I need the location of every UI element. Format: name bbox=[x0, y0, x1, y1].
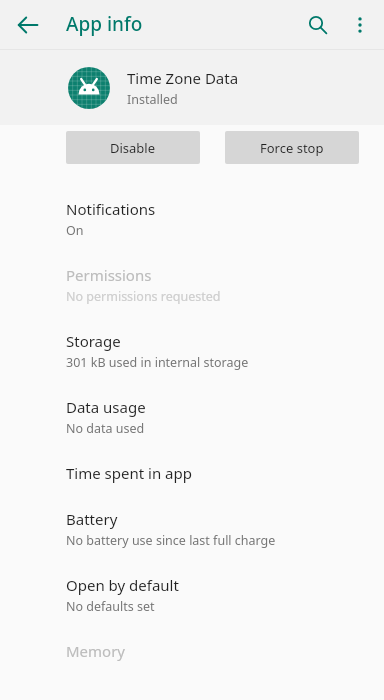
staticText: Time Zone Data bbox=[127, 68, 239, 88]
button[interactable]: Back bbox=[8, 5, 48, 45]
staticText: Open by default bbox=[66, 575, 179, 595]
staticText: No permissions requested bbox=[66, 288, 221, 305]
button[interactable]: Permissions bbox=[0, 252, 384, 318]
staticText: On bbox=[66, 222, 84, 239]
staticText: Notifications bbox=[66, 199, 156, 219]
staticText: No data used bbox=[66, 420, 145, 437]
button[interactable]: Open by default bbox=[0, 562, 384, 628]
button[interactable]: Notifications bbox=[0, 186, 384, 252]
staticText: Force stop bbox=[260, 139, 324, 157]
button[interactable]: Memory bbox=[0, 628, 384, 674]
button[interactable]: More options bbox=[340, 5, 380, 45]
staticText: Data usage bbox=[66, 397, 146, 417]
button[interactable]: Time spent in app bbox=[0, 450, 384, 496]
button[interactable]: Storage bbox=[0, 318, 384, 384]
button[interactable]: Force stop bbox=[225, 131, 359, 164]
staticText: No defaults set bbox=[66, 598, 155, 615]
button[interactable]: Time Zone Data bbox=[0, 50, 384, 125]
staticText: No battery use since last full charge bbox=[66, 532, 276, 549]
button[interactable]: Search bbox=[296, 3, 340, 47]
staticText: 301 kB used in internal storage bbox=[66, 354, 249, 371]
staticText: Memory bbox=[66, 641, 126, 661]
staticText: Storage bbox=[66, 331, 121, 351]
staticText: App info bbox=[66, 11, 143, 37]
staticText: Battery bbox=[66, 509, 118, 529]
staticText: Permissions bbox=[66, 265, 152, 285]
button[interactable]: Disable bbox=[66, 131, 200, 164]
button[interactable]: Battery bbox=[0, 496, 384, 562]
staticText: Time spent in app bbox=[66, 463, 192, 483]
staticText: Disable bbox=[110, 139, 156, 157]
staticText: Installed bbox=[127, 91, 178, 108]
button[interactable]: Data usage bbox=[0, 384, 384, 450]
